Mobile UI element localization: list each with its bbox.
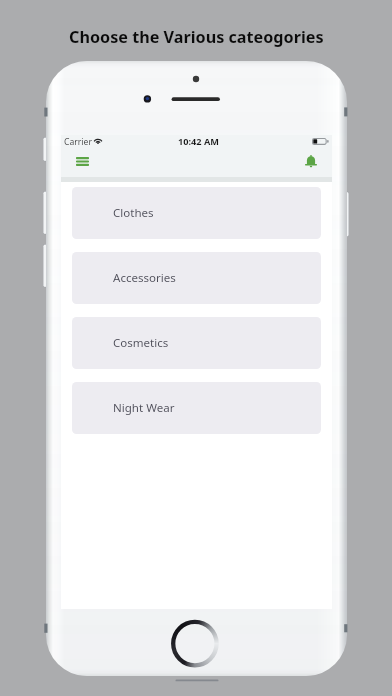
staticText: Cosmetics (113, 335, 169, 351)
button[interactable]: Night Wear (72, 382, 321, 434)
button[interactable]: Notifications (301, 150, 320, 172)
staticText: 10:42 AM (178, 135, 220, 148)
staticText: Clothes (113, 205, 154, 221)
button[interactable]: Clothes (72, 187, 321, 239)
staticText: Night Wear (113, 400, 175, 416)
button[interactable]: Accessories (72, 252, 321, 304)
staticText: Accessories (113, 270, 176, 286)
button[interactable]: Cosmetics (72, 317, 321, 369)
button[interactable]: Open navigation menu (73, 150, 92, 172)
staticText: Choose the Various cateogories (69, 26, 324, 48)
staticText: Carrier (64, 136, 92, 148)
